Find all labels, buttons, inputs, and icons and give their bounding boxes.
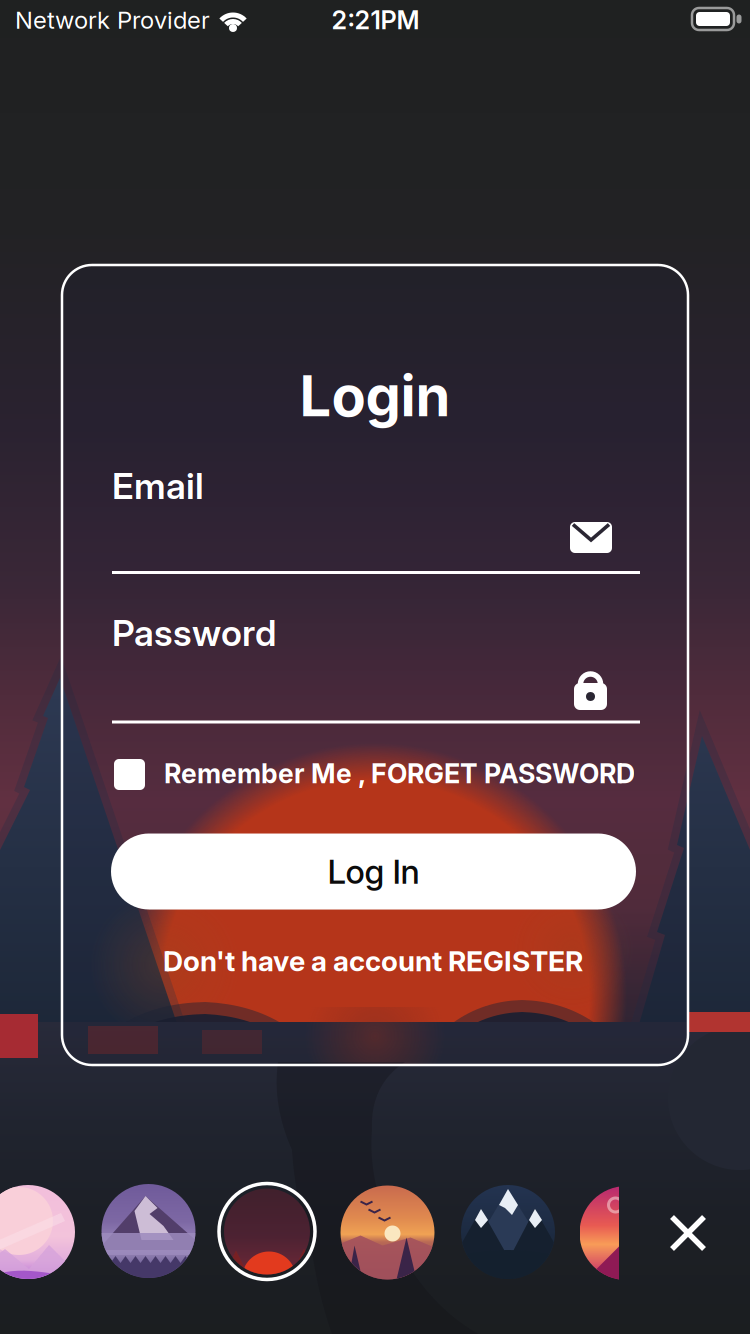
button[interactable]: Night mountain theme (461, 1185, 555, 1279)
button[interactable]: Remember Me , FORGET PASSWORD (164, 758, 664, 789)
button[interactable]: Don't have a account REGISTER (163, 944, 583, 977)
button[interactable]: Close (658, 1203, 718, 1263)
staticText: 2:21PM (331, 5, 419, 35)
button[interactable]: Pink planet theme (0, 1185, 75, 1279)
button[interactable]: Email (112, 505, 640, 571)
button[interactable]: Orange sunset theme (340, 1185, 434, 1279)
button[interactable]: Remember Me (114, 759, 145, 790)
button[interactable]: Pink pyramid theme (579, 1186, 673, 1280)
staticText: Login (299, 363, 450, 429)
staticText: Log In (327, 852, 419, 891)
staticText: Email (112, 465, 204, 507)
button[interactable]: Red sunset theme (selected) (217, 1181, 317, 1281)
button[interactable]: Log In (111, 833, 636, 909)
button[interactable]: Password (112, 653, 640, 719)
staticText: Network Provider (15, 6, 210, 34)
staticText: Don't have a account REGISTER (163, 944, 583, 977)
staticText: Password (112, 612, 276, 654)
staticText: Remember Me , FORGET PASSWORD (164, 758, 635, 789)
button[interactable]: Purple mountain theme (101, 1184, 195, 1278)
